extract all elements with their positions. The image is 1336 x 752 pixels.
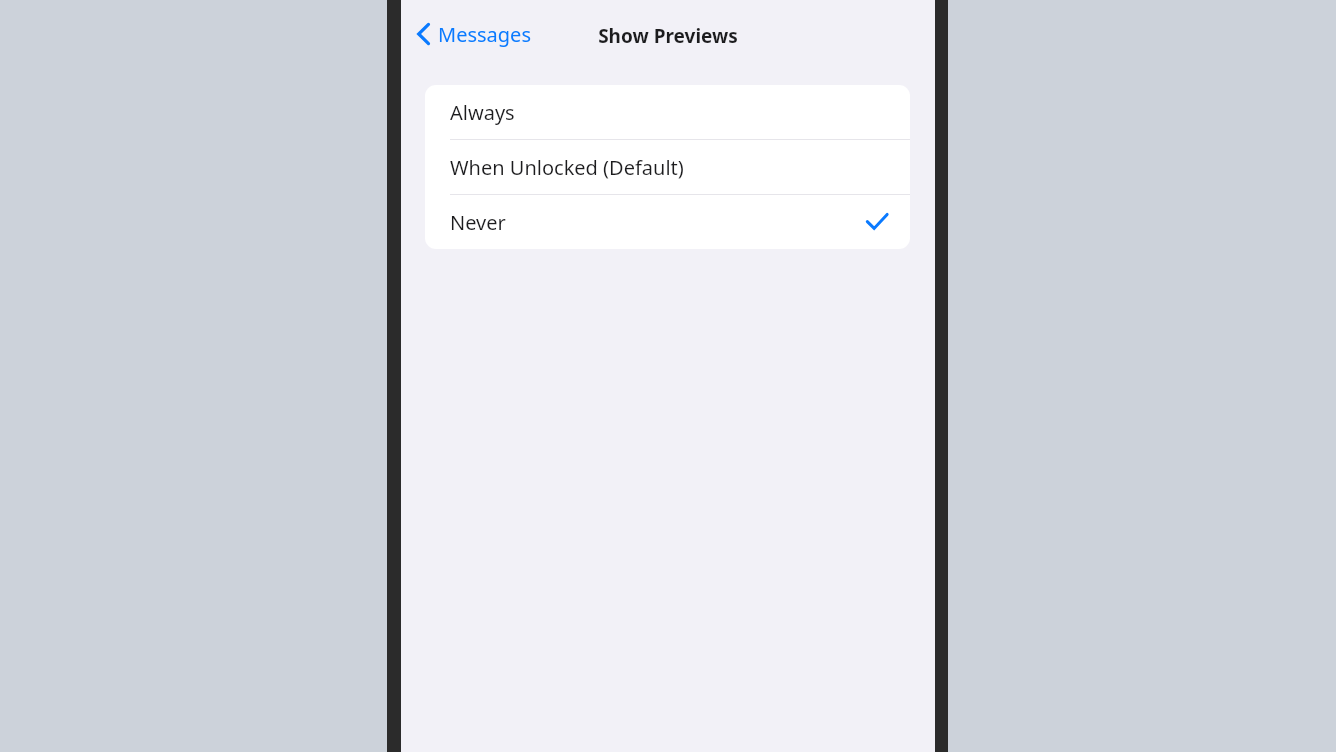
staticText: When Unlocked (Default)	[450, 154, 888, 181]
staticText: Never	[450, 209, 866, 236]
button[interactable]: Never	[425, 195, 910, 249]
button[interactable]: Always	[425, 85, 910, 139]
other: Selected	[866, 212, 888, 232]
staticText: Messages	[438, 21, 531, 48]
button[interactable]: When Unlocked (Default)	[425, 140, 910, 194]
staticText: Always	[450, 99, 888, 126]
button[interactable]: Messages	[411, 12, 537, 56]
staticText: Show Previews	[598, 23, 738, 49]
